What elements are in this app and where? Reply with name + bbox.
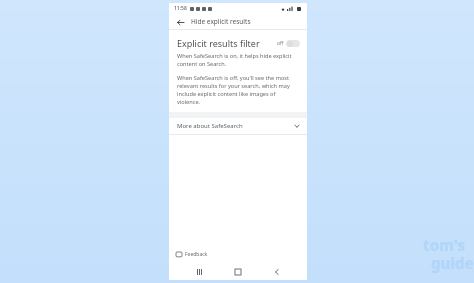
button[interactable]: Back: [174, 16, 186, 28]
staticText: guide: [431, 253, 474, 273]
button[interactable]: off: [277, 40, 300, 47]
staticText: More about SafeSearch: [177, 122, 294, 130]
staticText: Hide explicit results: [191, 17, 251, 26]
button[interactable]: Home: [229, 264, 247, 280]
staticText: Explicit results filter: [177, 37, 277, 49]
staticText: 11:58: [174, 5, 187, 12]
button[interactable]: Feedback: [169, 249, 214, 260]
staticText: When SafeSearch is on, it helps hide exp…: [177, 52, 299, 68]
staticText: off: [277, 40, 284, 47]
staticText: Feedback: [185, 251, 208, 258]
button[interactable]: Back: [268, 264, 286, 280]
button[interactable]: More about SafeSearch: [169, 118, 307, 134]
staticText: tom's: [423, 235, 466, 255]
button[interactable]: Recent apps: [190, 264, 208, 280]
staticText: When SafeSearch is off, you'll see the m…: [177, 74, 299, 106]
